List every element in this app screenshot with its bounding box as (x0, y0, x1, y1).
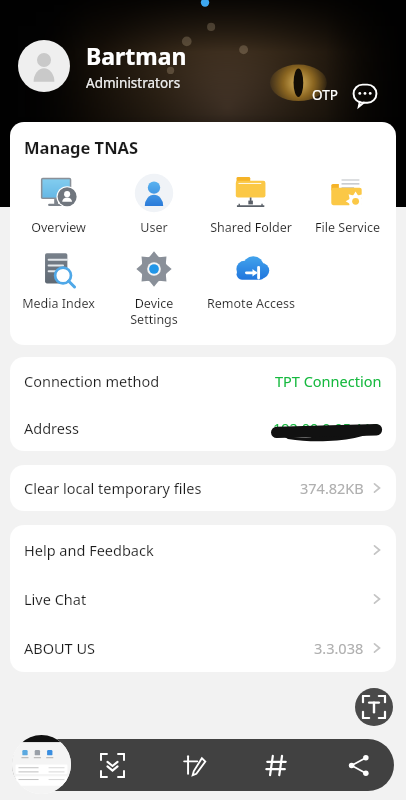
button[interactable]: Media Index (10, 246, 106, 314)
button[interactable]: Extract text (355, 688, 393, 726)
staticText: Manage TNAS (24, 136, 139, 158)
button[interactable]: Screenshot preview (12, 735, 71, 794)
staticText: Connection method (24, 371, 160, 391)
staticText: ABOUT US (24, 638, 96, 658)
staticText: 3.3.038 (314, 638, 364, 658)
button[interactable]: ABOUT US (10, 623, 396, 672)
staticText: User (140, 219, 168, 236)
staticText: File Service (315, 219, 380, 236)
button[interactable]: Messages (352, 82, 378, 108)
staticText: Bartman (86, 40, 187, 71)
button[interactable]: Connection method (10, 357, 396, 404)
button[interactable]: Device Settings (106, 246, 202, 329)
staticText: Overview (31, 219, 86, 236)
button[interactable]: OTP (310, 82, 340, 108)
button[interactable]: Scrolling screenshot (90, 743, 134, 787)
button[interactable]: Shared Folder (202, 170, 299, 238)
staticText: Shared Folder (210, 219, 292, 236)
button[interactable]: Address (10, 404, 396, 451)
staticText: 374.82KB (300, 478, 364, 498)
staticText: OTP (312, 86, 338, 104)
button[interactable]: Overview (10, 170, 106, 238)
staticText: Device Settings (110, 295, 198, 327)
button[interactable]: Remote Access (202, 246, 299, 314)
staticText: Clear local temporary files (24, 478, 202, 498)
staticText: Administrators (86, 74, 181, 92)
button[interactable]: Markup (172, 743, 216, 787)
staticText: 192.00.0.05:113 (273, 418, 380, 438)
button[interactable]: Clear local temporary files (10, 465, 396, 511)
staticText: Live Chat (24, 589, 87, 609)
staticText: Address (24, 418, 79, 438)
button[interactable]: Share (336, 743, 380, 787)
staticText: Help and Feedback (24, 540, 154, 560)
button[interactable]: Live Chat (10, 574, 396, 623)
button[interactable]: File Service (299, 170, 396, 238)
button[interactable]: Help and Feedback (10, 525, 396, 574)
staticText: Remote Access (207, 295, 295, 312)
button[interactable]: Profile (18, 40, 70, 92)
staticText: TPT Connection (275, 371, 382, 391)
button[interactable]: Tag (254, 743, 298, 787)
staticText: Media Index (22, 295, 95, 312)
button[interactable]: User (106, 170, 202, 238)
